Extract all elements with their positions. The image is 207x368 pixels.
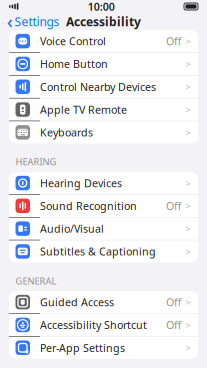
- staticText: ‹: [7, 10, 13, 33]
- button[interactable]: Guided Access: [9, 291, 198, 314]
- staticText: >: [185, 177, 190, 189]
- staticText: HEARING: [15, 155, 56, 168]
- button[interactable]: Apple TV Remote: [9, 98, 198, 121]
- staticText: Control Nearby Devices: [40, 80, 156, 94]
- staticText: Sound Recognition: [40, 199, 137, 213]
- staticText: Apple TV Remote: [40, 102, 127, 117]
- staticText: >: [185, 126, 190, 139]
- staticText: Accessibility Shortcut: [40, 318, 147, 332]
- button[interactable]: Keyboards: [9, 121, 198, 143]
- staticText: Keyboards: [40, 125, 93, 139]
- staticText: >: [185, 200, 190, 212]
- staticText: Off: [166, 295, 181, 309]
- staticText: Home Button: [40, 57, 108, 71]
- staticText: >: [185, 319, 190, 331]
- button[interactable]: Hearing Devices: [9, 172, 198, 195]
- button[interactable]: ‹: [0, 8, 59, 35]
- staticText: Subtitles & Captioning: [40, 244, 156, 259]
- button[interactable]: Sound Recognition: [9, 195, 198, 217]
- staticText: Settings: [14, 13, 59, 29]
- button[interactable]: Accessibility Shortcut: [9, 314, 198, 337]
- button[interactable]: Control Nearby Devices: [9, 76, 198, 98]
- staticText: GENERAL: [15, 275, 56, 287]
- staticText: >: [185, 81, 190, 93]
- staticText: Off: [166, 318, 181, 332]
- staticText: Off: [166, 199, 181, 213]
- staticText: >: [185, 341, 190, 354]
- staticText: >: [185, 103, 190, 116]
- staticText: Audio/Visual: [40, 222, 104, 236]
- staticText: >: [185, 35, 190, 47]
- staticText: >: [185, 222, 190, 235]
- staticText: Accessibility: [66, 13, 141, 29]
- button[interactable]: Audio/Visual: [9, 217, 198, 240]
- staticText: >: [185, 245, 190, 258]
- button[interactable]: Subtitles & Captioning: [9, 240, 198, 263]
- staticText: Guided Access: [40, 295, 114, 309]
- button[interactable]: Per-App Settings: [9, 337, 198, 359]
- staticText: >: [185, 58, 190, 70]
- staticText: Hearing Devices: [40, 176, 122, 190]
- staticText: Voice Control: [40, 34, 106, 48]
- button[interactable]: Home Button: [9, 53, 198, 76]
- button[interactable]: Voice Control: [9, 30, 198, 53]
- staticText: Off: [166, 34, 181, 48]
- staticText: Per-App Settings: [40, 341, 125, 355]
- staticText: >: [185, 296, 190, 308]
- staticText: 10:00: [88, 0, 115, 14]
